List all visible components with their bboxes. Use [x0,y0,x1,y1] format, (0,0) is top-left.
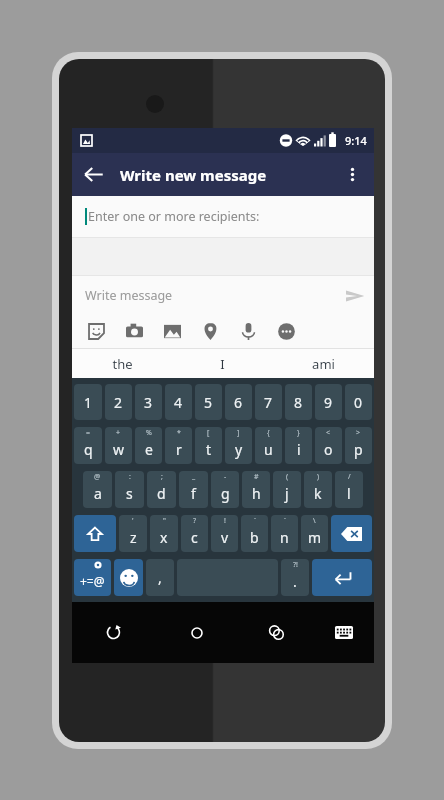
button[interactable]: 2 [105,384,132,420]
button[interactable]: Camera [115,315,153,348]
button[interactable]: x [150,515,178,552]
button[interactable]: 5 [195,384,222,420]
button[interactable]: 1 [74,384,102,420]
button[interactable]: 4 [165,384,192,420]
staticText: @ [94,472,101,482]
button[interactable]: Recent apps [238,602,314,663]
staticText: b [250,528,259,547]
button[interactable]: . [281,559,309,596]
button[interactable]: q [74,427,102,464]
staticText: 2 [114,393,123,412]
staticText: 1 [84,393,93,412]
button[interactable]: 8 [285,384,312,420]
staticText: i [297,440,301,459]
staticText: < [326,428,331,438]
button[interactable]: z [119,515,147,552]
button[interactable]: r [165,427,192,464]
button[interactable]: Enter [312,559,372,596]
button[interactable]: t [195,427,222,464]
staticText: ami [312,355,335,373]
button[interactable]: 3 [135,384,162,420]
staticText: j [285,484,289,503]
button[interactable]: e [135,427,162,464]
button[interactable]: Shift [74,515,116,552]
button[interactable]: p [345,427,372,464]
button[interactable]: Back [72,602,155,663]
staticText: h [252,484,261,503]
staticText: > [356,428,361,438]
button[interactable]: y [225,427,252,464]
staticText: p [354,440,363,459]
staticText: ] [237,428,240,438]
button[interactable]: Emoji [114,559,143,596]
button[interactable]: 7 [255,384,282,420]
button[interactable]: v [211,515,238,552]
staticText: k [314,484,322,503]
button[interactable]: w [105,427,132,464]
button[interactable]: g [211,471,239,508]
button[interactable]: o [315,427,342,464]
staticText: % [146,428,152,438]
button[interactable]: Backspace [331,515,372,552]
staticText: + [116,428,121,438]
staticText: 8 [294,393,303,412]
staticText: g [221,484,230,503]
staticText: x [160,528,168,547]
staticText: 9 [324,393,333,412]
button[interactable]: Send [335,276,374,315]
button[interactable]: m [301,515,328,552]
button[interactable]: ami [273,349,374,378]
staticText: 5 [204,393,213,412]
button[interactable]: u [255,427,282,464]
staticText: # [254,472,259,482]
staticText: I [220,355,225,373]
button[interactable]: Enter one or more recipients: [85,196,260,237]
staticText: the [112,355,133,373]
button[interactable]: 0 [345,384,372,420]
staticText: { [267,428,270,438]
button[interactable]: j [273,471,301,508]
button[interactable]: Location [191,315,229,348]
button[interactable]: h [242,471,270,508]
staticText: = [86,428,91,438]
staticText: w [113,440,125,459]
button[interactable]: f [179,471,208,508]
button[interactable]: Back [72,153,115,196]
button[interactable]: 6 [225,384,252,420]
button[interactable]: Write message [85,287,335,304]
button[interactable]: k [304,471,332,508]
staticText: ! [224,516,226,526]
button[interactable]: I [172,349,273,378]
button[interactable]: the [72,349,172,378]
staticText: u [264,440,273,459]
button[interactable]: l [335,471,363,508]
button[interactable]: i [285,427,312,464]
staticText: t [206,440,212,459]
staticText: f [191,484,196,503]
button[interactable]: a [83,471,112,508]
staticText: 6 [234,393,243,412]
button[interactable]: 9 [315,384,342,420]
button[interactable]: More attachments [267,315,305,348]
button[interactable]: Sticker [77,315,115,348]
staticText: ´ [284,516,286,526]
button[interactable]: More options [331,153,374,196]
staticText: ' [132,516,134,526]
button[interactable]: s [115,471,144,508]
staticText: [ [207,428,210,438]
button[interactable]: Gallery [153,315,191,348]
staticText: e [145,440,153,459]
button[interactable]: Switch keyboard [314,602,374,663]
button[interactable]: Voice message [229,315,267,348]
button[interactable]: n [271,515,298,552]
staticText: v [221,528,229,547]
button[interactable]: Home [155,602,238,663]
staticText: Enter one or more recipients: [88,208,260,225]
staticText: ` [254,516,256,526]
button[interactable]: b [241,515,268,552]
button[interactable]: Symbols [74,559,111,596]
button[interactable]: d [147,471,176,508]
button[interactable]: c [181,515,208,552]
button[interactable]: , [146,559,174,596]
